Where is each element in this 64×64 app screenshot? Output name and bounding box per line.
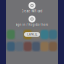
- button[interactable]: Create WiFi card: [6, 2, 58, 13]
- button[interactable]: Sign in / Register here: [6, 15, 58, 26]
- staticText: Sign in / Register here: [15, 23, 48, 26]
- staticText: CANCEL: [27, 33, 37, 36]
- button[interactable]: CANCEL: [24, 32, 40, 37]
- staticText: Create WiFi card: [21, 9, 42, 13]
